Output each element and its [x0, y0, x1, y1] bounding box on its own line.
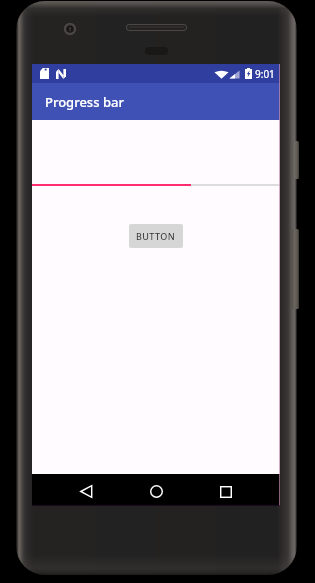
staticText: 9:01 [255, 67, 275, 81]
button[interactable]: BUTTON [129, 224, 183, 248]
staticText: Progress bar [45, 93, 124, 111]
button[interactable]: Recents [211, 477, 240, 506]
button[interactable]: Back [72, 477, 101, 506]
staticText: BUTTON [136, 230, 176, 242]
button[interactable]: Home [142, 477, 171, 506]
